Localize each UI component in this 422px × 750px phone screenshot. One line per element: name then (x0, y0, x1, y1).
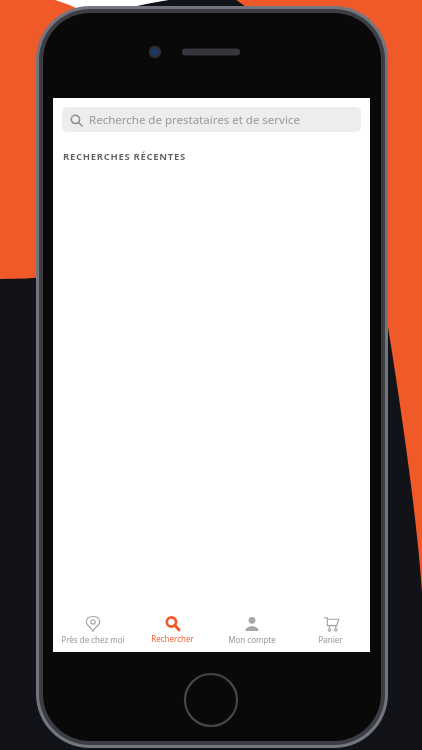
staticText: Recherche de prestataires et de service (89, 112, 300, 128)
staticText: RECHERCHES RÉCENTES (63, 150, 186, 163)
button[interactable]: Mon compte (212, 608, 291, 652)
staticText: Panier (318, 634, 343, 645)
button[interactable]: Rechercher (133, 608, 212, 652)
staticText: Près de chez moi (61, 634, 125, 645)
button[interactable]: Recherche de prestataires et de service (62, 107, 361, 132)
button[interactable]: Près de chez moi (53, 608, 133, 652)
staticText: Rechercher (151, 633, 194, 644)
staticText: Mon compte (228, 634, 276, 645)
button[interactable]: Panier (291, 608, 370, 652)
